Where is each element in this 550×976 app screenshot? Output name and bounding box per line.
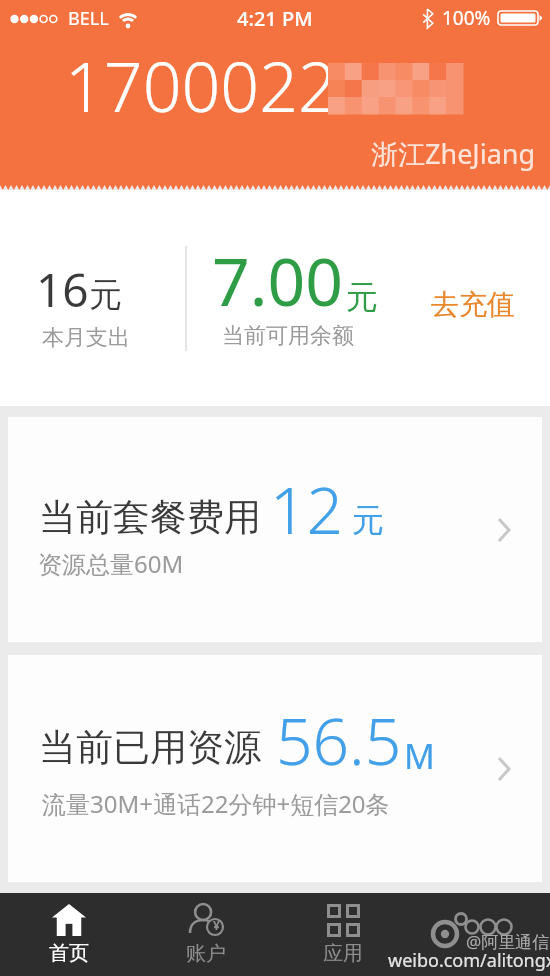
staticText: 元 — [352, 500, 384, 540]
button[interactable] — [412, 893, 550, 976]
staticText: 当前套餐费用 — [39, 494, 261, 541]
staticText: weibo.com/alitongxin — [388, 948, 550, 973]
staticText: 应用 — [323, 941, 363, 966]
staticText: 元 — [89, 274, 122, 316]
button[interactable]: 当前已用资源 — [8, 655, 542, 882]
staticText: 当前已用资源 — [39, 724, 261, 771]
staticText: 账户 — [186, 941, 226, 966]
staticText: 流量30M+通话22分钟+短信20条 — [42, 787, 390, 820]
staticText: 7.00 — [212, 235, 343, 325]
staticText: 本月支出 — [42, 324, 130, 352]
staticText: 浙江ZheJiang — [371, 135, 536, 172]
staticText: 56.5 — [276, 697, 402, 784]
button[interactable]: 应用 — [274, 893, 412, 976]
staticText: 1700022 — [65, 39, 337, 132]
staticText: 100% — [442, 5, 491, 31]
staticText: M — [404, 733, 435, 779]
button[interactable]: 当前套餐费用 — [8, 417, 542, 642]
staticText: 4:21 PM — [237, 5, 313, 32]
staticText: @阿里通信 — [466, 930, 550, 953]
staticText: 16 — [36, 258, 89, 321]
staticText: 去充值 — [431, 287, 515, 322]
button[interactable]: 去充值 — [431, 287, 515, 322]
staticText: 当前可用余额 — [222, 322, 354, 350]
staticText: 首页 — [49, 941, 89, 966]
staticText: 12 — [270, 466, 344, 553]
button[interactable]: ¥ — [137, 893, 274, 976]
staticText: 资源总量60M — [38, 547, 184, 580]
staticText: BELL — [68, 6, 109, 31]
button[interactable]: 首页 — [0, 893, 137, 976]
staticText: ¥ — [213, 917, 220, 933]
staticText: 元 — [346, 277, 378, 317]
